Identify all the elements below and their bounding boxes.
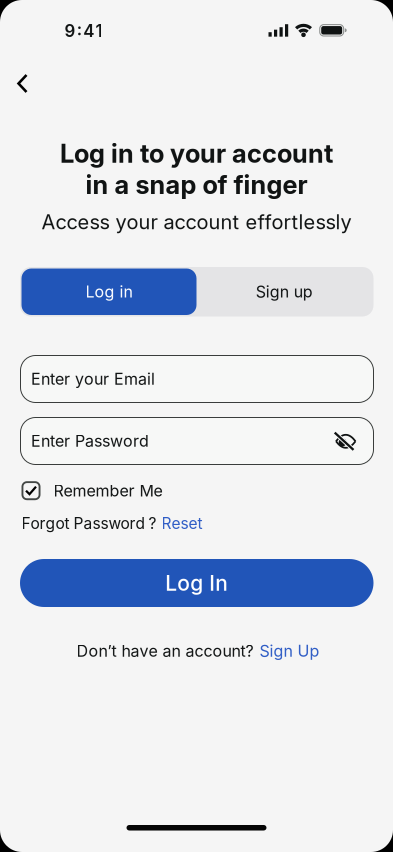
staticText: Enter your Email: [31, 369, 155, 389]
staticText: Forgot Password ?: [21, 514, 156, 533]
button[interactable]: Log in: [21, 268, 196, 315]
staticText: Sign Up: [259, 641, 319, 661]
staticText: Sign up: [256, 282, 313, 301]
button[interactable]: Enter Password: [20, 417, 374, 465]
staticText: Log in to your account: [60, 138, 333, 169]
button[interactable]: Sign Up: [259, 641, 319, 661]
button[interactable]: Log In: [20, 559, 373, 607]
button[interactable]: Enter your Email: [20, 355, 374, 403]
staticText: Log in: [85, 282, 132, 301]
button[interactable]: Sign up: [196, 268, 372, 315]
button[interactable]: [11, 72, 45, 94]
button[interactable]: Reset: [161, 514, 202, 533]
staticText: Enter Password: [31, 431, 149, 451]
staticText: Remember Me: [53, 481, 162, 500]
staticText: Don’t have an account?: [76, 641, 253, 661]
staticText: in a snap of finger: [85, 169, 307, 200]
staticText: Access your account effortlessly: [41, 210, 351, 234]
button[interactable]: [331, 427, 359, 455]
button[interactable]: Remember Me: [21, 481, 162, 500]
staticText: Log In: [165, 570, 228, 596]
staticText: 9:41: [65, 21, 102, 41]
staticText: Reset: [161, 514, 202, 533]
